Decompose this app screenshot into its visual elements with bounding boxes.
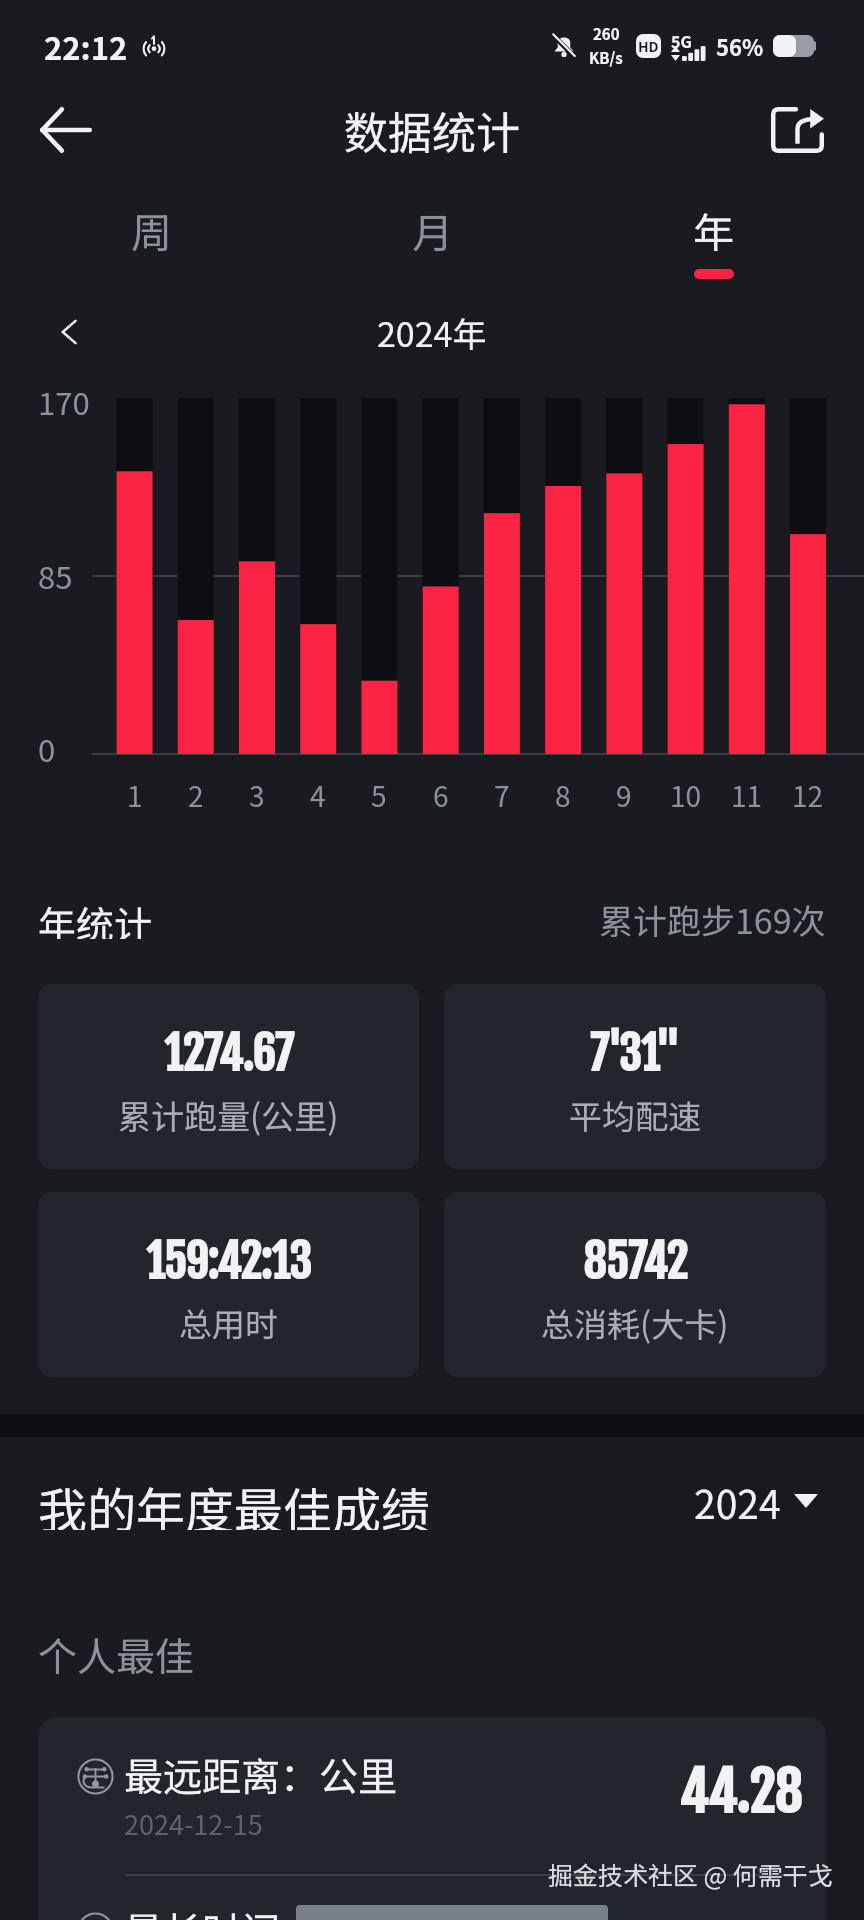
staticText: 12 bbox=[792, 775, 824, 816]
button[interactable]: 85742 bbox=[444, 1192, 826, 1377]
staticText: 44.28 bbox=[679, 1759, 802, 1827]
staticText: 7 bbox=[494, 775, 510, 816]
staticText: 4 bbox=[310, 775, 326, 816]
staticText: 总用时 bbox=[179, 1299, 278, 1347]
staticText: 85742 bbox=[583, 1234, 688, 1291]
staticText: 5 bbox=[371, 775, 387, 816]
button[interactable]: 1274.67 bbox=[38, 984, 419, 1169]
staticText: 11 bbox=[731, 775, 763, 816]
staticText: 总消耗(大卡) bbox=[541, 1299, 729, 1347]
staticText: 85 bbox=[38, 553, 73, 597]
staticText: 170 bbox=[38, 379, 90, 423]
staticText: 最远距离：公里 bbox=[124, 1746, 398, 1802]
staticText: 3 bbox=[249, 775, 265, 816]
staticText: 个人最佳 bbox=[38, 1626, 195, 1674]
staticText: 累计跑步169次 bbox=[599, 895, 826, 939]
staticText: 2024 bbox=[694, 1474, 781, 1530]
button[interactable]: Back bbox=[25, 92, 107, 168]
staticText: 掘金技术社区 @ 何需干戈 bbox=[548, 1856, 833, 1892]
staticText: 22:12 bbox=[44, 24, 128, 69]
staticText: 2 bbox=[188, 775, 204, 816]
button[interactable]: Share bbox=[758, 92, 836, 168]
staticText: 数据统计 bbox=[344, 98, 520, 162]
staticText: 56% bbox=[716, 30, 764, 62]
staticText: 年 bbox=[693, 200, 734, 259]
staticText: 9 bbox=[616, 775, 632, 816]
staticText: 最长时间 bbox=[124, 1901, 281, 1920]
staticText: 10 bbox=[670, 775, 702, 816]
button[interactable]: Previous year bbox=[42, 304, 98, 360]
staticText: 累计跑量(公里) bbox=[118, 1091, 339, 1139]
staticText: 8 bbox=[555, 775, 571, 816]
staticText: 周 bbox=[131, 200, 172, 259]
staticText: 6 bbox=[433, 775, 449, 816]
staticText: 2024年 bbox=[377, 308, 487, 357]
button[interactable]: 月 bbox=[292, 178, 573, 288]
staticText: 年统计 bbox=[38, 895, 153, 939]
staticText: 月 bbox=[412, 200, 453, 259]
staticText: 1 bbox=[127, 775, 143, 816]
staticText: 7'31" bbox=[590, 1026, 680, 1083]
button[interactable]: 159:42:13 bbox=[38, 1192, 419, 1377]
staticText: HD bbox=[638, 36, 659, 56]
staticText: 159:42:13 bbox=[146, 1234, 312, 1291]
button[interactable]: 2024 bbox=[694, 1473, 818, 1529]
staticText: 5G bbox=[671, 29, 692, 52]
staticText: 1274.67 bbox=[164, 1026, 294, 1083]
button[interactable]: 周 bbox=[10, 178, 292, 288]
staticText: 平均配速 bbox=[569, 1091, 701, 1139]
staticText: 2024-12-15 bbox=[124, 1804, 263, 1843]
staticText: KB/s bbox=[589, 47, 623, 69]
button[interactable]: 年 bbox=[573, 178, 854, 288]
staticText: 0 bbox=[38, 726, 56, 770]
staticText: 我的年度最佳成绩 bbox=[38, 1472, 431, 1530]
button[interactable]: 最远距离：公里 bbox=[39, 1717, 826, 1920]
button[interactable]: 7'31" bbox=[444, 984, 826, 1169]
staticText: 260 bbox=[593, 23, 620, 45]
